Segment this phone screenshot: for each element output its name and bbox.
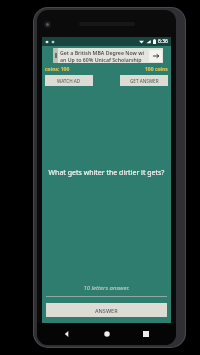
staticText: 6:36	[158, 38, 168, 45]
button[interactable]: Recent apps	[137, 325, 155, 343]
staticText: WATCH AD	[57, 78, 81, 84]
staticText: 10 letters answer.	[42, 284, 171, 292]
staticText: Get a British MBA Degree Now wi	[60, 49, 144, 56]
button[interactable]: Back	[58, 325, 76, 343]
button[interactable]: Open ad	[149, 50, 162, 62]
staticText: 100 coins	[145, 66, 168, 73]
button[interactable]: Home	[98, 325, 116, 343]
staticText: an Up to 60% Unicaf Scholarship	[60, 56, 142, 63]
staticText: GET ANSWER	[130, 78, 159, 84]
staticText: ANSWER	[95, 307, 118, 314]
staticText: coins: 100	[45, 66, 70, 73]
button[interactable]: Get a British MBA Degree Now wi	[53, 48, 163, 63]
staticText: What gets whiter the dirtier it gets?	[47, 168, 166, 178]
button[interactable]: WATCH AD	[45, 75, 93, 86]
button[interactable]: GET ANSWER	[120, 75, 168, 86]
button[interactable]: ANSWER	[46, 303, 167, 317]
